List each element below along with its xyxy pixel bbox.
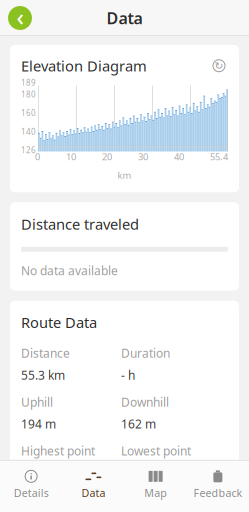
staticText: Details xyxy=(14,486,49,500)
staticText: 189 xyxy=(21,77,36,88)
staticText: 136 m xyxy=(121,465,156,481)
staticText: Lowest point xyxy=(121,443,191,459)
button[interactable]: Map xyxy=(124,466,187,504)
staticText: Uphill xyxy=(21,394,53,410)
staticText: 126 xyxy=(21,145,36,155)
staticText: Duration xyxy=(121,345,170,361)
staticText: ‹ xyxy=(16,2,23,32)
staticText: Highest point xyxy=(21,443,95,459)
staticText: - h xyxy=(121,367,135,383)
staticText: Distance xyxy=(21,345,70,361)
staticText: 20 xyxy=(102,150,112,163)
button[interactable]: Back xyxy=(0,0,40,36)
staticText: 140 xyxy=(21,126,36,137)
staticText: Data xyxy=(106,7,142,29)
button[interactable]: Data xyxy=(62,466,124,504)
staticText: 160 xyxy=(21,108,36,118)
staticText: ↻ xyxy=(214,60,223,72)
staticText: 194 m xyxy=(21,416,56,432)
staticText: Distance traveled xyxy=(21,214,139,234)
staticText: 179 m xyxy=(21,465,56,481)
button[interactable]: Details xyxy=(0,466,62,504)
button[interactable]: Refresh elevation diagram xyxy=(210,57,228,75)
staticText: 180 xyxy=(21,89,36,100)
staticText: Data xyxy=(81,486,105,500)
staticText: 55.3 km xyxy=(21,367,65,383)
button[interactable]: Feedback xyxy=(187,466,249,504)
staticText: Route Data xyxy=(21,313,97,332)
staticText: 55.4 xyxy=(210,150,228,163)
staticText: 0 xyxy=(35,150,40,163)
staticText: 30 xyxy=(138,150,148,163)
staticText: 10 xyxy=(66,150,76,163)
staticText: No data available xyxy=(21,263,118,279)
staticText: 40 xyxy=(174,150,184,163)
staticText: km xyxy=(117,169,131,181)
staticText: 162 m xyxy=(121,416,156,432)
staticText: Downhill xyxy=(121,394,169,410)
staticText: Elevation Diagram xyxy=(21,56,147,75)
staticText: Map xyxy=(144,486,167,500)
staticText: Feedback xyxy=(193,486,242,500)
